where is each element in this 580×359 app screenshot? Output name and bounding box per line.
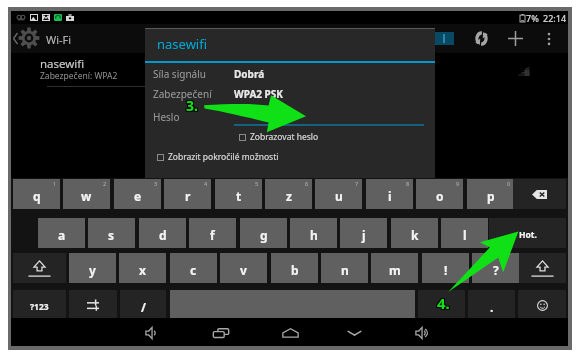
staticText: 4. [437, 293, 450, 313]
button[interactable]: Recent apps [210, 322, 232, 344]
staticText: 3. [186, 96, 198, 115]
staticText: 4. [437, 292, 450, 312]
button[interactable]: Home [279, 322, 301, 344]
staticText: 8 [406, 180, 410, 187]
staticText: WPA2 PSK [234, 87, 283, 101]
button[interactable]: e [114, 179, 161, 209]
staticText: r [185, 188, 191, 204]
button[interactable]: del [513, 179, 566, 209]
button[interactable]: nasewifi [37, 53, 151, 98]
button[interactable]: mic [418, 290, 465, 320]
staticText: o [436, 188, 444, 204]
staticText: 2 [103, 180, 107, 187]
button[interactable]: q [13, 179, 60, 209]
button[interactable]: ! [422, 253, 469, 283]
staticText: 4. [436, 294, 449, 314]
staticText: w [81, 188, 92, 204]
button[interactable]: h [290, 218, 337, 248]
staticText: 1 [53, 180, 57, 187]
button[interactable]: g [240, 218, 287, 248]
button[interactable]: Volume up [411, 322, 433, 344]
button[interactable]: More options [537, 24, 561, 53]
button[interactable]: d [139, 218, 186, 248]
staticText: p [487, 188, 495, 204]
staticText: Zabezpečení: WPA2 [40, 70, 118, 82]
button[interactable] [170, 290, 415, 320]
button[interactable]: n [321, 253, 368, 283]
staticText: 3. [185, 96, 197, 115]
staticText: 3 [154, 180, 158, 187]
button[interactable]: j [340, 218, 387, 248]
button[interactable]: p [467, 179, 514, 209]
staticText: y [89, 262, 96, 278]
staticText: 4. [436, 292, 449, 312]
button[interactable]: Up [11, 24, 74, 53]
staticText: q [33, 188, 41, 204]
staticText: 9 [456, 180, 460, 187]
staticText: 4. [438, 292, 451, 312]
staticText: 7% [526, 12, 539, 24]
button[interactable]: ?123 [13, 290, 66, 320]
button[interactable]: z [265, 179, 312, 209]
button[interactable]: o [416, 179, 463, 209]
button[interactable]: v [220, 253, 267, 283]
button[interactable]: Add network [503, 24, 527, 53]
button[interactable]: lang [69, 290, 117, 320]
staticText: 4. [438, 293, 451, 313]
staticText: 4 [204, 180, 208, 187]
staticText: Zabezpečení [153, 87, 212, 101]
button[interactable]: Scan [469, 24, 493, 53]
staticText: Wi-Fi [46, 32, 72, 47]
button[interactable]: l [441, 218, 488, 248]
button[interactable]: y [69, 253, 116, 283]
button[interactable]: shift [519, 253, 566, 283]
staticText: . [490, 299, 494, 315]
button[interactable]: Hide keyboard [343, 322, 365, 344]
button[interactable]: Hot. [489, 218, 566, 248]
button[interactable]: x [119, 253, 166, 283]
staticText: Heslo [153, 110, 180, 124]
staticText: 3. [186, 95, 198, 114]
button[interactable]: Zobrazovat heslo [239, 131, 319, 143]
button[interactable]: Volume down [141, 322, 163, 344]
staticText: z [286, 188, 292, 204]
staticText: Hot. [519, 229, 537, 241]
staticText: 0 [507, 180, 511, 187]
staticText: l [463, 227, 467, 243]
staticText: b [291, 262, 299, 278]
staticText: f [210, 227, 215, 243]
staticText: 3. [186, 97, 198, 116]
button[interactable]: u [315, 179, 362, 209]
button[interactable]: s [88, 218, 135, 248]
button[interactable]: shift [13, 253, 66, 283]
staticText: 3. [187, 95, 199, 114]
button[interactable]: Zobrazit pokročilé možnosti [157, 151, 279, 163]
button[interactable]: r [164, 179, 211, 209]
staticText: j [362, 227, 366, 243]
button[interactable]: m [371, 253, 418, 283]
button[interactable]: k [391, 218, 438, 248]
button[interactable]: c [170, 253, 217, 283]
staticText: ?123 [30, 301, 49, 313]
button[interactable]: Wi-Fi on [435, 32, 454, 45]
staticText: s [108, 227, 115, 243]
staticText: 22:14 [543, 12, 567, 24]
button[interactable]: b [271, 253, 318, 283]
button[interactable]: w [63, 179, 110, 209]
button[interactable]: a [38, 218, 85, 248]
button[interactable]: t [215, 179, 262, 209]
button[interactable]: ? [472, 253, 519, 283]
staticText: 3. [185, 97, 197, 116]
button[interactable]: smile [518, 290, 566, 320]
staticText: d [159, 227, 167, 243]
staticText: 4. [437, 294, 450, 314]
button[interactable]: f [189, 218, 236, 248]
staticText: m [389, 262, 401, 278]
staticText: 7 [355, 180, 359, 187]
button[interactable]: i [366, 179, 413, 209]
button[interactable]: / [120, 290, 166, 320]
button[interactable]: . [468, 290, 515, 320]
staticText: 3. [185, 95, 197, 114]
staticText: / [141, 299, 146, 315]
staticText: 6 [305, 180, 309, 187]
